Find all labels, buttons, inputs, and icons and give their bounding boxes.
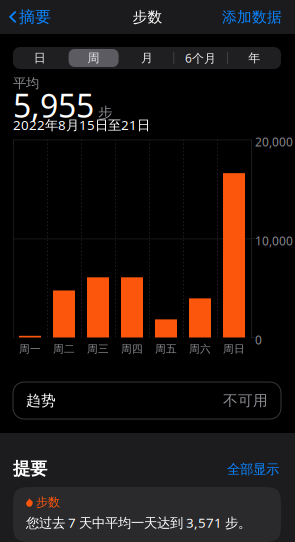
button[interactable]: 年 [227,47,281,69]
staticText: 趋势 [26,391,56,409]
staticText: 5,955 [13,84,94,126]
staticText: 步数 [132,8,162,26]
button[interactable]: 添加数据 [216,0,295,34]
staticText: 月 [141,51,153,65]
staticText: 周六 [189,342,211,355]
staticText: 10,000 [255,233,293,249]
staticText: 摘要 [19,7,51,27]
staticText: 您过去 7 天中平均一天达到 3,571 步。 [26,514,251,531]
staticText: 6个月 [185,50,216,66]
staticText: 周二 [53,342,75,355]
staticText: 年 [248,51,260,65]
staticText: 0 [255,332,262,348]
button[interactable]: 全部显示 [221,457,285,481]
staticText: 周 [87,51,99,65]
button[interactable]: 周 [67,47,120,69]
staticText: 周三 [87,342,109,355]
staticText: 步数 [36,495,60,510]
staticText: 20,000 [255,134,293,150]
staticText: 周四 [121,342,143,355]
staticText: 日 [34,51,46,65]
staticText: 平均 [13,75,39,91]
staticText: 周五 [155,342,177,355]
button[interactable]: 月 [120,47,174,69]
staticText: 不可用 [223,391,268,409]
button[interactable]: 步数 [13,487,281,542]
button[interactable]: 6个月 [174,47,227,69]
button[interactable]: 摘要 [0,0,57,34]
staticText: 步 [98,104,113,122]
button[interactable]: 趋势 [13,382,281,419]
staticText: 周日 [223,342,245,355]
staticText: 周一 [19,342,41,355]
staticText: 提要 [13,458,47,479]
staticText: 全部显示 [227,461,279,477]
button[interactable]: 日 [13,47,67,69]
staticText: 添加数据 [222,8,282,26]
staticText: 2022年8月15日至21日 [13,116,150,134]
